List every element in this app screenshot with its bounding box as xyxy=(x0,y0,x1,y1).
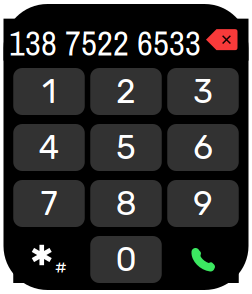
button[interactable]: 6 xyxy=(167,124,239,171)
staticText: 9 xyxy=(193,184,213,223)
button[interactable]: Delete xyxy=(206,29,238,51)
staticText: 0 xyxy=(115,240,136,279)
button[interactable]: 2 xyxy=(90,68,162,115)
staticText: 8 xyxy=(115,184,136,223)
button[interactable]: 9 xyxy=(167,180,239,227)
button[interactable]: 3 xyxy=(167,68,239,115)
staticText: 2 xyxy=(116,72,136,111)
staticText: 138 7522 6533 xyxy=(9,20,201,66)
button[interactable]: 5 xyxy=(90,124,162,171)
staticText: # xyxy=(55,257,67,278)
staticText: 6 xyxy=(193,128,213,167)
staticText: 1 xyxy=(42,72,56,111)
button[interactable]: 1 xyxy=(13,68,85,115)
button[interactable]: Star, pound xyxy=(13,236,85,283)
staticText: 5 xyxy=(116,128,136,167)
staticText: 7 xyxy=(40,184,57,223)
staticText: 4 xyxy=(38,128,59,167)
button[interactable]: 0 xyxy=(90,236,162,283)
staticText: 3 xyxy=(193,72,213,111)
button[interactable]: 7 xyxy=(13,180,85,227)
button[interactable]: Call xyxy=(167,236,239,283)
button[interactable]: 4 xyxy=(13,124,85,171)
button[interactable]: 8 xyxy=(90,180,162,227)
